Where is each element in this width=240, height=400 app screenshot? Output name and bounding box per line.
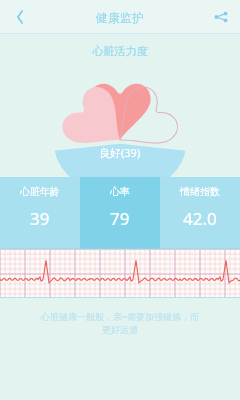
staticText: 情绪指数: [180, 185, 220, 198]
button[interactable]: Share: [206, 2, 236, 32]
button[interactable]: 心率: [80, 177, 160, 249]
staticText: 健康监护: [96, 10, 144, 25]
button[interactable]: Back: [4, 1, 36, 33]
staticText: 39: [30, 207, 50, 230]
staticText: 心脏活力度: [0, 44, 240, 58]
staticText: 心率: [110, 185, 130, 198]
staticText: 42.0: [183, 207, 217, 230]
staticText: 心脏年龄: [20, 185, 60, 198]
staticText: 心脏健康一般般，亲~需要加强锻炼，而 更好运道: [16, 310, 224, 335]
staticText: 良好(39): [99, 145, 141, 160]
button[interactable]: 情绪指数: [160, 177, 240, 249]
staticText: 79: [110, 207, 130, 230]
button[interactable]: 心脏年龄: [0, 177, 80, 249]
